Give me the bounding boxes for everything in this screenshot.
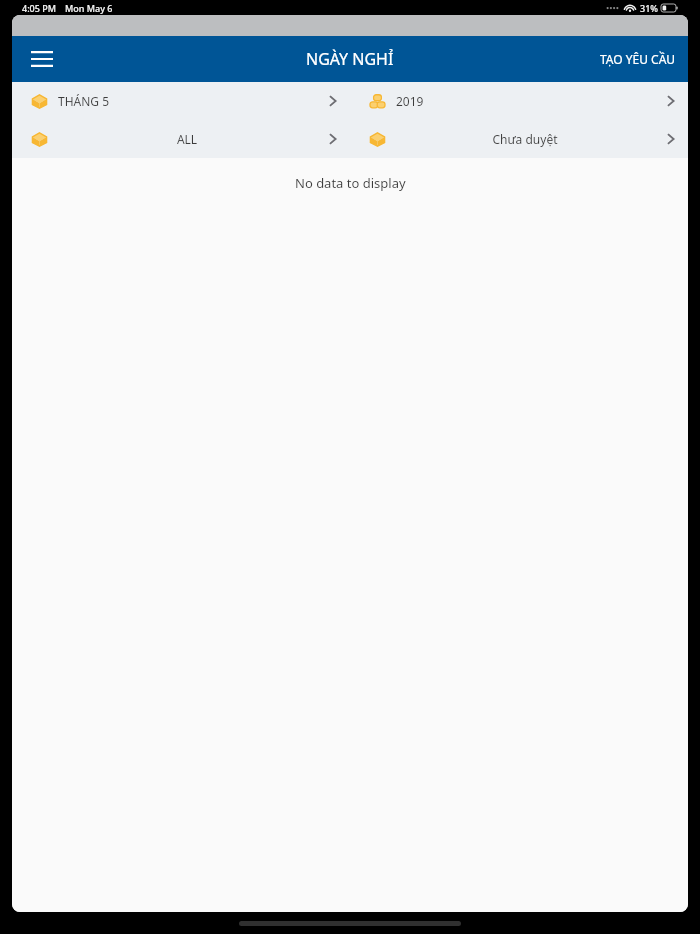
button[interactable]: TẠO YÊU CẦU	[588, 41, 688, 77]
staticText: No data to display	[295, 174, 406, 192]
staticText: 31%	[640, 2, 658, 14]
staticText: 2019	[396, 93, 654, 109]
staticText: Chưa duyệt	[396, 131, 654, 147]
staticText: THÁNG 5	[58, 93, 316, 109]
button[interactable]: Menu	[22, 39, 62, 79]
staticText: 4:05 PM	[22, 2, 56, 14]
button[interactable]: 2019	[350, 82, 688, 120]
staticText: ALL	[58, 131, 316, 147]
button[interactable]: ALL	[12, 120, 350, 158]
button[interactable]: THÁNG 5	[12, 82, 350, 120]
button[interactable]: Chưa duyệt	[350, 120, 688, 158]
staticText: Mon May 6	[65, 2, 113, 14]
staticText: TẠO YÊU CẦU	[600, 51, 676, 67]
staticText: NGÀY NGHỈ	[306, 48, 394, 70]
